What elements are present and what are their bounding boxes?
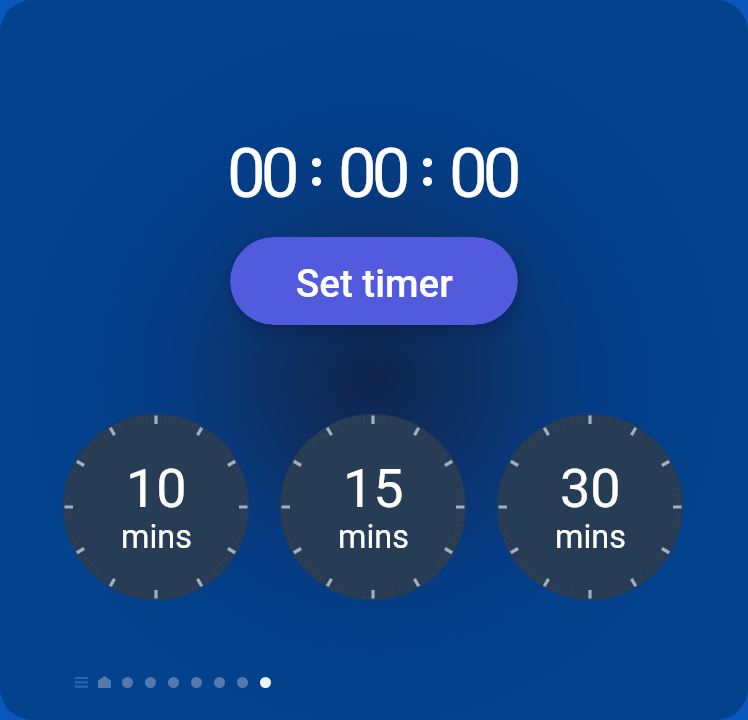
button[interactable] [144, 673, 157, 691]
button[interactable]: Home [98, 673, 111, 691]
button[interactable] [121, 673, 134, 691]
staticText: mins [555, 518, 626, 556]
button[interactable] [190, 673, 203, 691]
button[interactable]: 10 [63, 414, 249, 600]
button[interactable] [259, 673, 272, 691]
staticText: mins [338, 518, 409, 556]
staticText: 00 [338, 133, 406, 214]
staticText: 00 [449, 133, 517, 214]
staticText: 30 [560, 457, 621, 520]
button[interactable] [213, 673, 226, 691]
staticText: mins [121, 518, 192, 556]
staticText: 10 [126, 457, 187, 520]
staticText: 15 [343, 457, 404, 520]
button[interactable]: 30 [497, 414, 683, 600]
button[interactable]: Menu [75, 673, 88, 691]
staticText: 00 [227, 133, 295, 214]
button[interactable]: Set timer [230, 237, 518, 325]
button[interactable] [236, 673, 249, 691]
button[interactable] [167, 673, 180, 691]
staticText: Set timer [296, 261, 453, 306]
button[interactable]: 15 [280, 414, 466, 600]
